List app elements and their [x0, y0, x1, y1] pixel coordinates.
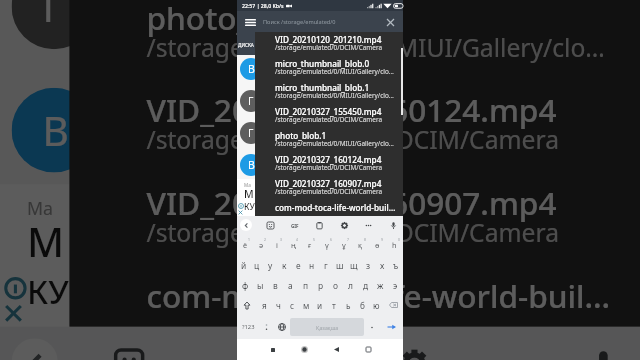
staticText: я	[262, 300, 267, 311]
button[interactable]: Back	[12, 338, 58, 360]
button[interactable]: ?123	[237, 315, 259, 339]
button[interactable]: н	[305, 255, 319, 275]
button[interactable]: More options	[362, 219, 375, 232]
button[interactable]: Back	[240, 219, 252, 231]
button[interactable]: В	[237, 154, 403, 179]
button[interactable]: micro_thumbnail_blob.1	[275, 82, 403, 106]
button[interactable]: В	[0, 88, 640, 184]
button[interactable]: VID_20210120_201210.mp4	[275, 34, 403, 58]
button[interactable]: ч	[271, 295, 285, 315]
button[interactable]: Change language	[274, 315, 290, 339]
button[interactable]: ь	[341, 295, 355, 315]
button[interactable]: г	[319, 255, 333, 275]
staticText: 4	[296, 237, 298, 242]
button[interactable]: ц	[250, 255, 263, 275]
button[interactable]: ұ	[335, 234, 352, 255]
button[interactable]: Shift	[237, 295, 257, 315]
button[interactable]: Comma	[259, 315, 274, 339]
button[interactable]: GIF	[288, 219, 301, 232]
button[interactable]: Home	[297, 342, 312, 357]
button[interactable]: ж	[373, 275, 388, 295]
staticText: com-mod-toca-life-world-buil…	[275, 202, 396, 213]
button[interactable]: micro_thumbnail_blob.0	[275, 58, 403, 82]
button[interactable]: GIF	[197, 338, 247, 360]
button[interactable]: б	[355, 295, 369, 315]
button[interactable]: Back	[329, 342, 344, 357]
button[interactable]: Voice input	[387, 219, 400, 232]
button[interactable]: Г	[237, 90, 403, 122]
button[interactable]: VID_20210327_155450.mp4	[275, 106, 403, 130]
button[interactable]: com-mod-toca-life-world-buil…	[275, 202, 403, 218]
staticText: VID_20210327_155450.mp4	[275, 106, 382, 117]
button[interactable]: ү	[318, 234, 335, 255]
button[interactable]: д	[358, 275, 373, 295]
button[interactable]: Stickers	[104, 338, 154, 360]
button[interactable]: Voice input	[578, 338, 628, 360]
button[interactable]: ф	[237, 275, 253, 295]
button[interactable]: х	[375, 255, 389, 275]
button[interactable]: з	[361, 255, 375, 275]
button[interactable]: к	[277, 255, 291, 275]
button[interactable]: Г	[0, 0, 640, 88]
button[interactable]: в	[268, 275, 283, 295]
button[interactable]: Clear search	[380, 12, 400, 32]
button[interactable]: VID_20210327_160907.mp4	[275, 178, 403, 202]
button[interactable]: у	[263, 255, 277, 275]
staticText: Г	[42, 0, 65, 34]
button[interactable]: ъ	[389, 255, 403, 275]
staticText: ч	[276, 300, 281, 311]
button[interactable]: а	[283, 275, 298, 295]
button[interactable]: т	[327, 295, 341, 315]
button[interactable]: ё	[237, 234, 253, 255]
button[interactable]: і	[269, 234, 285, 255]
button[interactable]: ш	[333, 255, 347, 275]
button[interactable]: қ	[352, 234, 369, 255]
button[interactable]: photo_blob.1	[275, 130, 403, 154]
button[interactable]: ө	[369, 234, 386, 255]
button[interactable]: Г	[237, 122, 403, 154]
button[interactable]: Қазақша	[290, 318, 364, 336]
button[interactable]: Stickers	[264, 219, 277, 232]
button[interactable]: е	[291, 255, 305, 275]
button[interactable]: Enter	[380, 315, 403, 339]
button[interactable]: я	[257, 295, 271, 315]
button[interactable]: VID_20210327_160124.mp4	[146, 88, 640, 180]
button[interactable]: й	[237, 255, 250, 275]
button[interactable]: VID_20210327_160907.mp4	[146, 180, 640, 273]
button[interactable]: э	[388, 275, 403, 295]
button[interactable]: photo_blob.1	[146, 0, 640, 88]
button[interactable]: л	[343, 275, 358, 295]
button[interactable]: и	[313, 295, 327, 315]
button[interactable]: о	[328, 275, 343, 295]
button[interactable]: Period	[364, 315, 380, 339]
staticText: /storage/emulated/0/MIUI/Gallery/clo…	[275, 139, 394, 148]
staticText: е	[296, 260, 301, 271]
button[interactable]: Settings	[338, 219, 351, 232]
button[interactable]: һ	[386, 234, 403, 255]
button[interactable]: р	[313, 275, 328, 295]
button[interactable]: ю	[369, 295, 383, 315]
button[interactable]: ғ	[301, 234, 318, 255]
button[interactable]: ң	[285, 234, 301, 255]
button[interactable]: Recents	[265, 342, 280, 357]
button[interactable]: Menu	[240, 12, 260, 32]
button[interactable]: Settings	[389, 338, 439, 360]
button[interactable]: п	[298, 275, 313, 295]
button[interactable]: В	[237, 58, 403, 90]
button[interactable]: щ	[347, 255, 361, 275]
button[interactable]: м	[299, 295, 313, 315]
button[interactable]: ы	[253, 275, 268, 295]
staticText: 3	[280, 237, 282, 242]
staticText: КУ	[27, 269, 69, 315]
button[interactable]: Backspace	[383, 295, 403, 315]
staticText: /storage/emulated/0/DCIM/Camera	[275, 163, 382, 172]
button[interactable]: VID_20210327_160124.mp4	[275, 154, 403, 178]
staticText: Г	[248, 94, 254, 108]
button[interactable]: с	[285, 295, 299, 315]
button[interactable]: Clipboard	[293, 338, 343, 360]
button[interactable]: Clipboard	[313, 219, 326, 232]
button[interactable]: Screenshot	[361, 342, 376, 357]
button[interactable]: ә	[253, 234, 269, 255]
button[interactable]: com-mod-toca-life-world-buil…	[146, 273, 640, 334]
